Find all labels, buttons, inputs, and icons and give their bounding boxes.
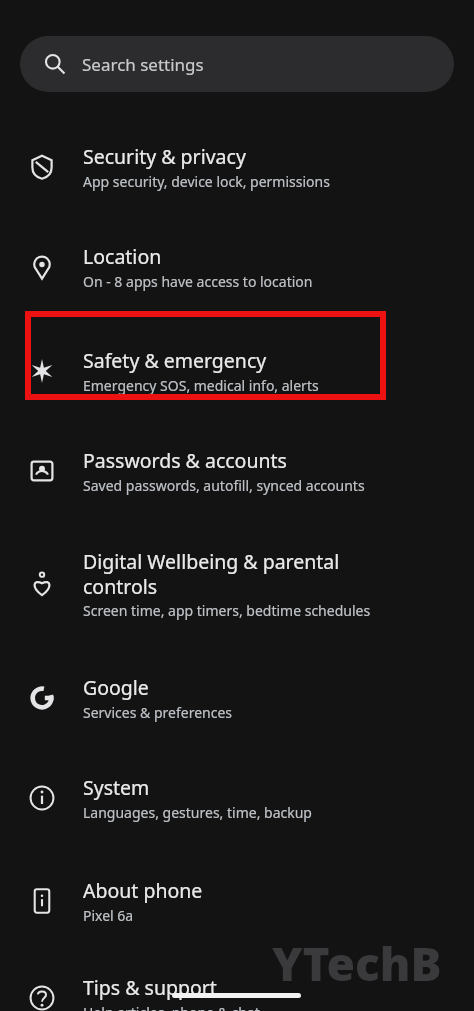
staticText: On - 8 apps have access to location: [83, 272, 313, 291]
staticText: YTechB: [272, 932, 442, 994]
button[interactable]: Digital Wellbeing and parental controls: [0, 528, 474, 640]
staticText: Search settings: [82, 53, 204, 76]
button[interactable]: System: [0, 755, 474, 841]
staticText: Pixel 6a: [83, 906, 134, 925]
staticText: Help articles, phone & chat: [83, 1003, 260, 1011]
staticText: Tips & support: [83, 974, 217, 1001]
staticText: About phone: [83, 877, 203, 904]
staticText: Screen time, app timers, bedtime schedul…: [83, 601, 371, 620]
button[interactable]: Search settings: [20, 36, 454, 92]
staticText: Google: [83, 674, 149, 701]
button[interactable]: Tips and support: [0, 955, 474, 1011]
staticText: Digital Wellbeing & parental controls: [83, 548, 383, 599]
staticText: Languages, gestures, time, backup: [83, 803, 312, 822]
button[interactable]: Security and privacy: [0, 124, 474, 210]
button[interactable]: About phone: [0, 858, 474, 944]
staticText: Services & preferences: [83, 703, 233, 722]
staticText: App security, device lock, permissions: [83, 172, 330, 191]
staticText: Emergency SOS, medical info, alerts: [83, 376, 319, 395]
button[interactable]: Location: [0, 224, 474, 310]
button[interactable]: Passwords and accounts: [0, 428, 474, 514]
staticText: Safety & emergency: [83, 347, 267, 374]
staticText: Security & privacy: [83, 143, 246, 170]
staticText: System: [83, 774, 150, 801]
button[interactable]: Safety and emergency: [0, 328, 474, 414]
staticText: Location: [83, 243, 162, 270]
staticText: Saved passwords, autofill, synced accoun…: [83, 476, 365, 495]
staticText: Passwords & accounts: [83, 447, 287, 474]
button[interactable]: Google: [0, 655, 474, 741]
